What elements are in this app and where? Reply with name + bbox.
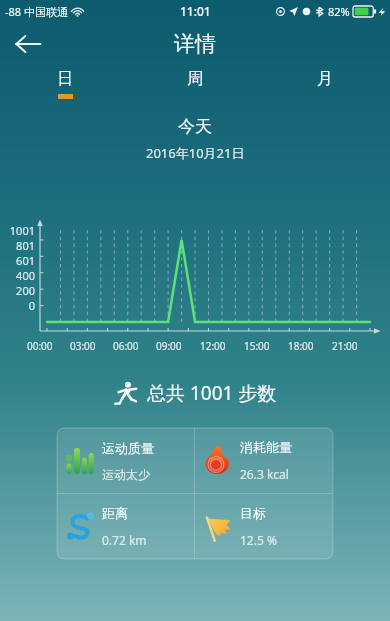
staticText: 详情 — [174, 31, 216, 57]
staticText: 801 — [16, 238, 35, 253]
staticText: 21:00 — [332, 339, 358, 353]
staticText: 总共 1001 步数 — [147, 380, 277, 406]
staticText: 400 — [16, 268, 35, 283]
button[interactable]: 日 — [0, 66, 130, 104]
staticText: 距离 — [102, 505, 128, 521]
staticText: 200 — [16, 283, 35, 298]
staticText: 15:00 — [244, 339, 270, 353]
staticText: 03:00 — [70, 339, 96, 353]
staticText: 26.3 kcal — [240, 466, 289, 482]
staticText: 00:00 — [27, 339, 53, 353]
staticText: 今天 — [178, 116, 212, 137]
staticText: 601 — [16, 253, 35, 268]
staticText: -88 中国联通 — [5, 4, 68, 19]
button[interactable]: 周 — [130, 66, 260, 104]
staticText: 06:00 — [113, 339, 139, 353]
button[interactable]: 消耗能量 — [195, 428, 333, 493]
staticText: 运动质量 — [102, 440, 154, 456]
staticText: 消耗能量 — [240, 439, 292, 455]
staticText: 12:00 — [200, 339, 226, 353]
staticText: 目标 — [240, 505, 266, 521]
button[interactable]: 距离 — [57, 494, 194, 559]
button[interactable]: Back — [6, 22, 50, 66]
staticText: 09:00 — [156, 339, 182, 353]
staticText: 0 — [28, 298, 35, 313]
staticText: 0.72 km — [102, 532, 147, 548]
staticText: 1001 — [9, 223, 35, 238]
button[interactable]: 月 — [260, 66, 390, 104]
staticText: 日 — [57, 69, 73, 89]
staticText: 18:00 — [288, 339, 314, 353]
staticText: 82% — [328, 4, 350, 19]
staticText: 月 — [317, 69, 333, 89]
staticText: 运动太少 — [102, 467, 150, 482]
staticText: 12.5 % — [240, 532, 277, 548]
staticText: 11:01 — [180, 3, 211, 19]
staticText: 周 — [187, 69, 203, 89]
staticText: 2016年10月21日 — [146, 144, 245, 162]
button[interactable]: 运动质量 — [57, 428, 194, 493]
button[interactable]: 目标 — [195, 494, 333, 559]
